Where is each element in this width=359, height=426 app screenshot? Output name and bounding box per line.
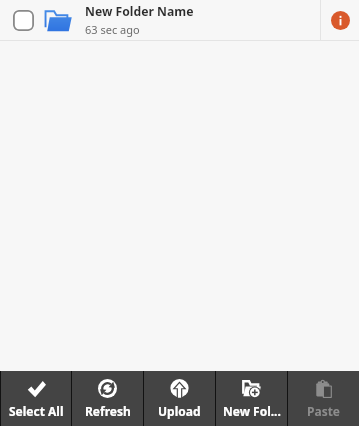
- button[interactable]: Refresh: [72, 371, 143, 426]
- staticText: New Fol...: [223, 403, 281, 419]
- staticText: Paste: [307, 403, 341, 419]
- button[interactable]: Upload: [144, 371, 215, 426]
- staticText: 63 sec ago: [85, 22, 140, 37]
- button[interactable]: Info: [321, 0, 359, 40]
- staticText: Select All: [9, 403, 64, 419]
- button[interactable]: New Folder Name: [0, 0, 320, 40]
- staticText: New Folder Name: [85, 3, 194, 20]
- button[interactable]: Select All: [1, 371, 71, 426]
- staticText: Upload: [158, 403, 201, 419]
- staticText: Refresh: [85, 403, 131, 419]
- button[interactable]: New Fol...: [216, 371, 287, 426]
- button[interactable]: Paste: [288, 371, 359, 426]
